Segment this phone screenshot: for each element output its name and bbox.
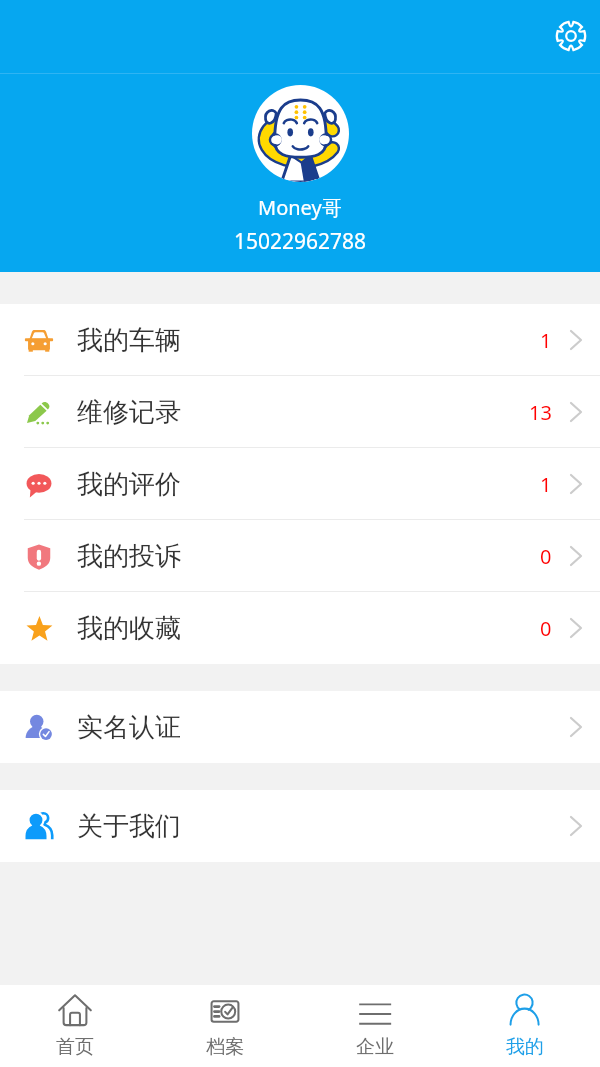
button[interactable]: 我的收藏: [0, 592, 600, 664]
button[interactable]: 我的: [450, 985, 600, 1067]
button[interactable]: 档案: [150, 985, 300, 1067]
staticText: 1: [540, 327, 552, 354]
staticText: 15022962788: [234, 227, 367, 256]
button[interactable]: 我的投诉: [0, 520, 600, 592]
button[interactable]: 关于我们: [0, 790, 600, 862]
button[interactable]: 我的车辆: [0, 304, 600, 376]
staticText: 我的评价: [77, 468, 181, 501]
button[interactable]: 维修记录: [0, 376, 600, 448]
staticText: 0: [540, 543, 552, 570]
staticText: 我的车辆: [77, 324, 181, 357]
button[interactable]: 企业: [300, 985, 450, 1067]
button[interactable]: [252, 85, 349, 182]
staticText: 企业: [356, 1035, 394, 1059]
staticText: 我的收藏: [77, 612, 181, 645]
staticText: 档案: [206, 1035, 244, 1059]
staticText: 我的投诉: [77, 540, 181, 573]
staticText: 我的: [506, 1035, 544, 1059]
staticText: 首页: [56, 1035, 94, 1059]
staticText: 13: [529, 399, 552, 426]
button[interactable]: 设置: [549, 14, 593, 58]
button[interactable]: 实名认证: [0, 691, 600, 763]
staticText: 关于我们: [77, 810, 181, 843]
button[interactable]: 首页: [0, 985, 150, 1067]
staticText: 维修记录: [77, 396, 181, 429]
staticText: 0: [540, 615, 552, 642]
staticText: Money哥: [258, 194, 342, 221]
button[interactable]: 我的评价: [0, 448, 600, 520]
staticText: 1: [540, 471, 552, 498]
staticText: 实名认证: [77, 711, 181, 744]
